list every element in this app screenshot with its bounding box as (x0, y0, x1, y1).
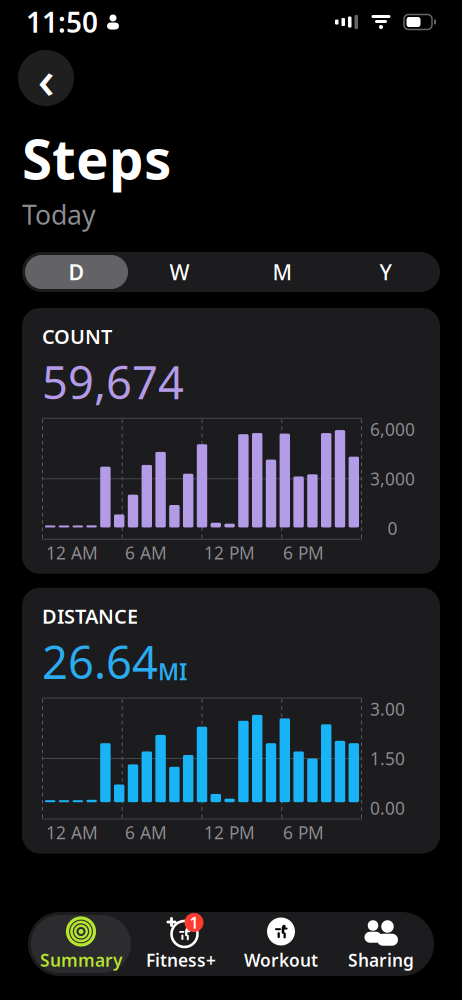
staticText: M (272, 258, 292, 286)
staticText: Today (22, 197, 96, 232)
button[interactable]: D (25, 255, 128, 289)
button[interactable]: 1 (131, 915, 231, 973)
staticText: 0 (387, 517, 397, 540)
staticText: COUNT (42, 323, 112, 350)
staticText: 3.00 (370, 697, 405, 720)
staticText: DISTANCE (42, 603, 138, 629)
staticText: 6,000 (370, 418, 415, 441)
staticText: 12 AM (46, 821, 98, 844)
staticText: 12 PM (204, 541, 255, 564)
staticText: 1 (189, 912, 198, 933)
staticText: 26.64 (42, 631, 158, 691)
staticText: 1.50 (370, 747, 405, 770)
button[interactable]: DISTANCE (22, 588, 440, 854)
staticText: 6 PM (283, 821, 324, 844)
staticText: 59,674 (42, 352, 184, 412)
staticText: W (169, 258, 189, 286)
staticText: 3,000 (370, 467, 415, 490)
button[interactable]: W (128, 255, 231, 289)
staticText: 6 PM (283, 541, 324, 564)
staticText: 0.00 (370, 796, 405, 819)
button[interactable]: Workout (231, 915, 331, 973)
staticText: MI (158, 656, 187, 686)
staticText: Sharing (348, 948, 414, 971)
button[interactable]: Y (334, 255, 437, 289)
staticText: 6 AM (125, 821, 167, 844)
staticText: ‹ (37, 43, 54, 113)
staticText: D (68, 258, 84, 286)
button[interactable]: M (231, 255, 334, 289)
button[interactable]: Sharing (331, 915, 431, 973)
staticText: Y (379, 258, 391, 286)
staticText: 11:50 (26, 3, 98, 41)
button[interactable]: Back (18, 50, 74, 106)
staticText: 6 AM (125, 541, 167, 564)
button[interactable]: COUNT (22, 308, 440, 574)
staticText: Summary (40, 948, 122, 971)
button[interactable]: Summary (31, 915, 131, 973)
staticText: Fitness+ (146, 948, 216, 971)
staticText: 12 PM (204, 821, 255, 844)
staticText: Workout (244, 948, 318, 971)
staticText: Steps (22, 122, 171, 195)
staticText: 12 AM (46, 541, 98, 564)
